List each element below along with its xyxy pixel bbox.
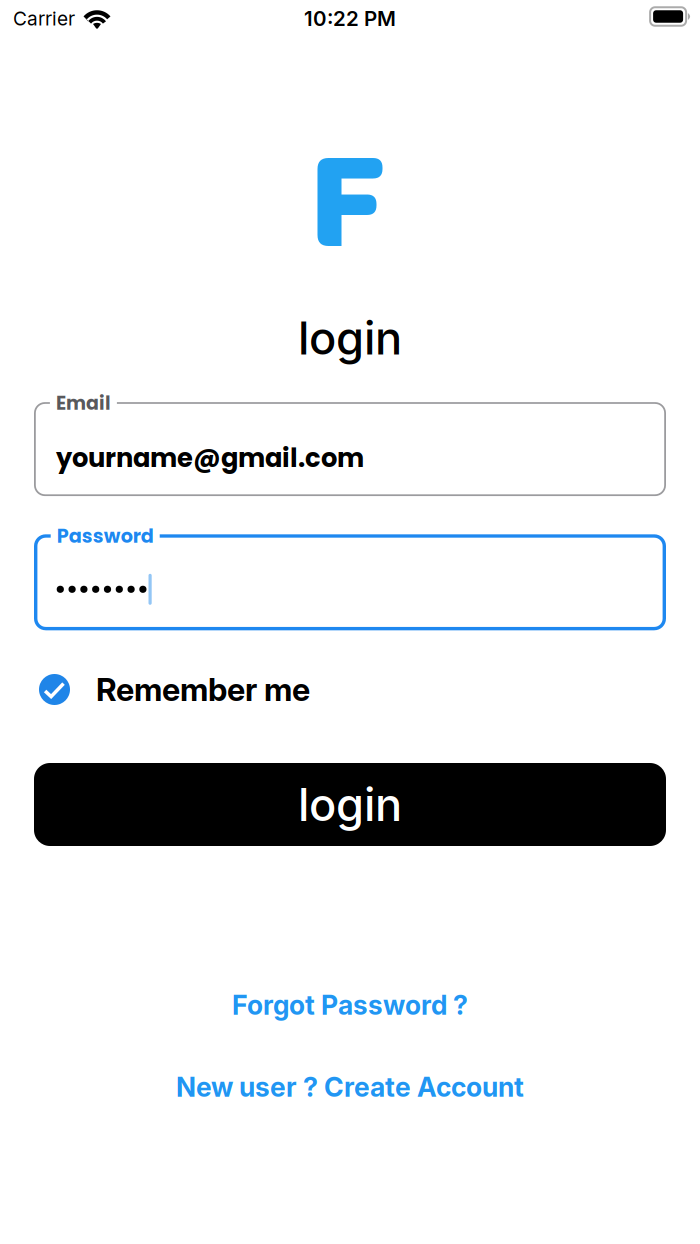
staticText: Email [56, 390, 111, 416]
button[interactable]: Remember me [0, 674, 700, 705]
staticText: yourname@gmail.com [56, 440, 364, 476]
staticText: login [298, 311, 402, 365]
staticText: Carrier [13, 7, 75, 30]
staticText: login [298, 777, 402, 832]
button[interactable]: New user ? Create Account [0, 1069, 700, 1105]
staticText: 10:22 PM [304, 6, 396, 31]
button[interactable]: login [34, 763, 666, 846]
staticText: Password [57, 523, 154, 549]
staticText: New user ? Create Account [176, 1071, 524, 1103]
staticText: Forgot Password ? [232, 989, 468, 1021]
button[interactable]: Forgot Password ? [0, 987, 700, 1023]
staticText: Remember me [96, 670, 310, 709]
